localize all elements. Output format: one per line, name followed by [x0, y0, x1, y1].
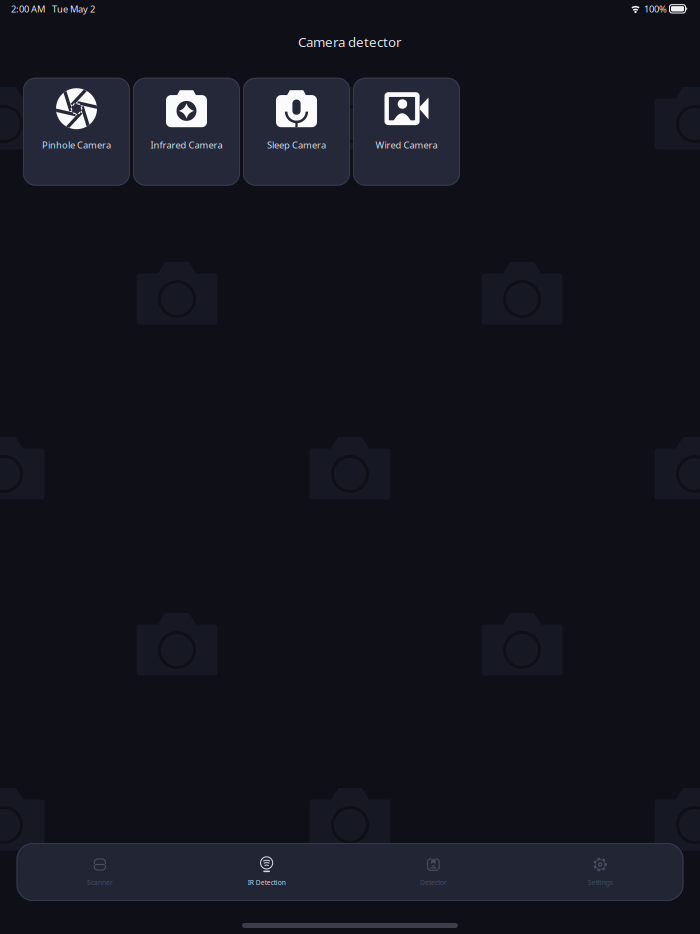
button[interactable]: Sleep Camera [243, 78, 350, 186]
staticText: Wired Camera [375, 139, 437, 151]
button[interactable]: Scanner [16, 843, 183, 901]
staticText: Pinhole Camera [42, 139, 111, 151]
staticText: Sleep Camera [267, 139, 326, 151]
staticText: Detector [420, 878, 447, 887]
staticText: 100% [644, 3, 667, 15]
button[interactable]: Wired Camera [353, 78, 460, 186]
staticText: Camera detector [298, 33, 402, 51]
button[interactable]: Pinhole Camera [23, 78, 130, 186]
staticText: Scanner [87, 878, 113, 887]
button[interactable]: Infrared Camera [133, 78, 240, 186]
staticText: IR Detection [248, 878, 286, 887]
staticText: Tue May 2 [52, 3, 95, 15]
button[interactable]: Detector [350, 843, 517, 901]
staticText: Infrared Camera [150, 139, 222, 151]
staticText: Settings [588, 878, 613, 887]
staticText: 2:00 AM [11, 3, 45, 15]
button[interactable]: IR Detection [183, 843, 350, 901]
button[interactable]: Settings [517, 843, 684, 901]
